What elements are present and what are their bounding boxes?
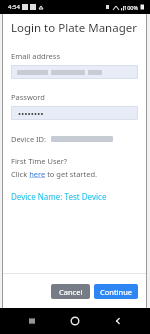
button[interactable] — [11, 65, 138, 79]
staticText: Login to Plate Manager — [11, 20, 137, 36]
staticText: First Time User? — [11, 156, 68, 166]
staticText: Password — [11, 92, 45, 102]
staticText: 100% — [124, 4, 139, 11]
button[interactable]: Back — [108, 311, 128, 331]
button[interactable] — [11, 106, 138, 120]
staticText: Email address — [11, 51, 61, 61]
staticText: 4:54 — [8, 3, 20, 11]
button[interactable]: Home — [65, 311, 85, 331]
staticText: Device ID: — [11, 134, 47, 144]
button[interactable]: Continue — [94, 284, 138, 299]
staticText: Continue — [100, 287, 133, 297]
staticText: Cancel — [59, 287, 83, 297]
button[interactable]: Cancel — [51, 284, 90, 299]
button[interactable]: Device Name: Test Device — [11, 191, 107, 202]
staticText: Click here to get started. — [11, 169, 98, 179]
button[interactable]: Click here to get started. — [11, 169, 98, 179]
button[interactable]: Recent apps — [22, 311, 42, 331]
